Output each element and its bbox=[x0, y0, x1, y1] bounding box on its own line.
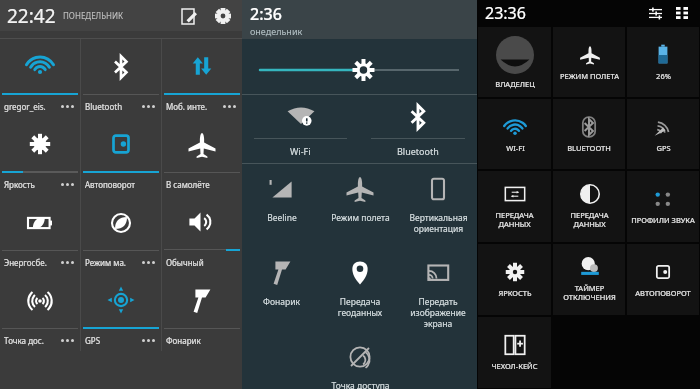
button[interactable]: GPS bbox=[627, 99, 699, 169]
staticText: Передать изображение экрана bbox=[399, 296, 477, 329]
button[interactable]: Передача геоданных bbox=[321, 248, 399, 332]
button[interactable]: АВТОПОВОРОТ bbox=[627, 244, 699, 315]
staticText: 22:42 bbox=[7, 3, 56, 29]
staticText: Точка доступа bbox=[331, 380, 390, 389]
staticText: Энергосбе. bbox=[4, 257, 47, 268]
button[interactable]: Beeline bbox=[242, 164, 321, 248]
staticText: Фонарик bbox=[166, 335, 201, 346]
button[interactable]: В самолёте bbox=[162, 117, 242, 195]
staticText: 23:36 bbox=[485, 2, 526, 24]
button[interactable]: ПЕРЕДАЧА ДАННЫХ bbox=[478, 171, 551, 242]
staticText: GPS bbox=[656, 143, 671, 153]
staticText: ЯРКОСТЬ bbox=[498, 288, 532, 298]
button[interactable]: ПЕРЕДАЧА ДАННЫХ bbox=[553, 171, 625, 242]
button[interactable]: Режим полета bbox=[321, 164, 399, 248]
button[interactable]: Энергосбе. bbox=[0, 195, 80, 273]
staticText: АВТОПОВОРОТ bbox=[635, 288, 691, 298]
staticText: онедельник bbox=[250, 25, 303, 37]
button[interactable]: Автоповорот bbox=[81, 117, 161, 195]
button[interactable]: Передать изображение экрана bbox=[399, 248, 477, 332]
button[interactable]: Режим ма. bbox=[81, 195, 161, 273]
button[interactable]: ТАЙМЕР ОТКЛЮЧЕНИЯ bbox=[553, 244, 625, 315]
button[interactable]: BLUETOOTH bbox=[553, 99, 625, 169]
staticText: Автоповорот bbox=[85, 179, 136, 190]
staticText: Вертикальная ориентация bbox=[409, 212, 468, 234]
staticText: Фонарик bbox=[263, 296, 300, 308]
button[interactable]: gregor_eis. bbox=[0, 39, 80, 117]
staticText: Передача геоданных bbox=[321, 296, 399, 318]
button[interactable]: 26% bbox=[627, 27, 699, 97]
staticText: Режим ма. bbox=[85, 257, 127, 268]
button[interactable]: ПРОФИЛИ ЗВУКА bbox=[627, 171, 699, 242]
button[interactable]: Settings bbox=[211, 4, 235, 28]
staticText: ВЛАДЕЛЕЦ bbox=[495, 79, 535, 89]
button[interactable]: Edit bbox=[177, 4, 201, 28]
staticText: ПЕРЕДАЧА ДАННЫХ bbox=[495, 210, 534, 230]
button[interactable]: Вертикальная ориентация bbox=[399, 164, 477, 248]
staticText: gregor_eis. bbox=[4, 101, 46, 112]
button[interactable]: Bluetooth bbox=[359, 95, 477, 163]
staticText: ТАЙМЕР ОТКЛЮЧЕНИЯ bbox=[563, 283, 616, 303]
staticText: Яркость bbox=[4, 179, 35, 190]
button[interactable]: ВЛАДЕЛЕЦ bbox=[478, 27, 551, 97]
button[interactable]: Обычный bbox=[162, 195, 242, 273]
staticText: Beeline bbox=[267, 212, 297, 224]
button[interactable]: Фонарик bbox=[162, 273, 242, 351]
staticText: Точка дос. bbox=[4, 335, 44, 346]
button[interactable]: GPS bbox=[81, 273, 161, 351]
staticText: ПОНЕДЕЛЬНИК bbox=[63, 10, 124, 21]
button[interactable]: Моб. инте. bbox=[162, 39, 242, 117]
staticText: Моб. инте. bbox=[166, 101, 208, 112]
staticText: Режим полета bbox=[331, 212, 390, 224]
button[interactable]: Точка дос. bbox=[0, 273, 80, 351]
staticText: Bluetooth bbox=[397, 145, 439, 157]
button[interactable]: Bluetooth bbox=[81, 39, 161, 117]
staticText: 26% bbox=[656, 71, 671, 81]
button[interactable]: Яркость bbox=[0, 117, 80, 195]
staticText: WI-FI bbox=[506, 143, 525, 153]
button[interactable]: Wi-Fi bbox=[242, 95, 359, 163]
button[interactable]: РЕЖИМ ПОЛЕТА bbox=[553, 27, 625, 97]
staticText: GPS bbox=[85, 335, 101, 346]
staticText: Bluetooth bbox=[85, 101, 123, 112]
staticText: РЕЖИМ ПОЛЕТА bbox=[560, 71, 619, 81]
staticText: ЧЕХОЛ-КЕЙС bbox=[491, 361, 538, 371]
button[interactable]: Точка доступа bbox=[321, 332, 399, 389]
button[interactable]: ЧЕХОЛ-КЕЙС bbox=[478, 317, 551, 388]
button[interactable]: Tune bbox=[645, 3, 665, 23]
button[interactable]: Фонарик bbox=[242, 248, 321, 332]
staticText: В самолёте bbox=[166, 179, 210, 190]
staticText: Wi-Fi bbox=[290, 145, 311, 157]
staticText: Обычный bbox=[166, 257, 204, 268]
button[interactable]: ЯРКОСТЬ bbox=[478, 244, 551, 315]
staticText: BLUETOOTH bbox=[567, 143, 611, 153]
staticText: ПРОФИЛИ ЗВУКА bbox=[631, 215, 695, 225]
staticText: ПЕРЕДАЧА ДАННЫХ bbox=[570, 210, 609, 230]
button[interactable]: WI-FI bbox=[478, 99, 551, 169]
button[interactable]: Grid bbox=[672, 3, 692, 23]
staticText: 2:36 bbox=[250, 3, 282, 25]
